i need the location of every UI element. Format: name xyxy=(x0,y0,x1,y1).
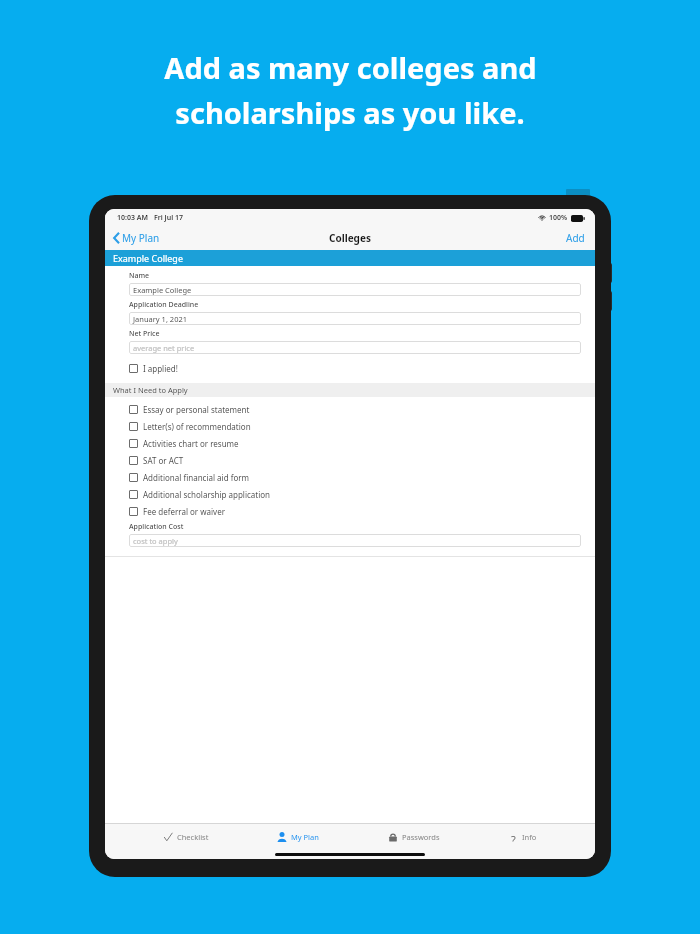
staticText: Letter(s) of recommendation xyxy=(143,421,251,432)
staticText: My Plan xyxy=(122,231,160,245)
staticText: Fee deferral or waiver xyxy=(143,506,225,517)
staticText: Application Deadline xyxy=(129,300,199,310)
staticText: I applied! xyxy=(143,363,178,374)
staticText: Additional scholarship application xyxy=(143,489,271,500)
button[interactable]: average net price xyxy=(129,341,581,354)
staticText: Example College xyxy=(113,252,183,264)
staticText: Info xyxy=(522,832,537,842)
staticText: My Plan xyxy=(291,832,319,842)
button[interactable]: Info xyxy=(498,827,547,847)
button[interactable]: Add xyxy=(556,226,595,250)
button[interactable]: Letter(s) of recommendation xyxy=(105,418,595,435)
staticText: Application Cost xyxy=(129,522,184,532)
staticText: SAT or ACT xyxy=(143,455,184,466)
staticText: 100% xyxy=(549,213,568,223)
button[interactable]: My Plan xyxy=(105,227,168,249)
staticText: What I Need to Apply xyxy=(113,385,188,395)
staticText: Name xyxy=(129,271,150,281)
button[interactable]: I applied! xyxy=(105,360,595,377)
staticText: Fri Jul 17 xyxy=(154,213,184,223)
button[interactable]: My Plan xyxy=(267,827,329,847)
button[interactable]: Checklist xyxy=(153,827,219,847)
button[interactable]: SAT or ACT xyxy=(105,452,595,469)
staticText: Add xyxy=(566,231,585,245)
staticText: Checklist xyxy=(177,832,209,842)
staticText: scholarships as you like. xyxy=(175,93,525,132)
staticText: Activities chart or resume xyxy=(143,438,239,449)
staticText: Add as many colleges and xyxy=(164,48,537,87)
other: Checklist xyxy=(163,832,173,842)
staticText: Example College xyxy=(133,285,192,295)
button[interactable]: cost to apply xyxy=(129,534,581,547)
button[interactable]: Essay or personal statement xyxy=(105,401,595,418)
button[interactable]: Activities chart or resume xyxy=(105,435,595,452)
staticText: cost to apply xyxy=(133,536,178,546)
staticText: 10:03 AM xyxy=(117,213,148,223)
staticText: Net Price xyxy=(129,329,160,339)
other: My Plan xyxy=(277,832,287,842)
button[interactable]: January 1, 2021 xyxy=(129,312,581,325)
staticText: January 1, 2021 xyxy=(133,314,188,324)
button[interactable]: Additional scholarship application xyxy=(105,486,595,503)
staticText: Additional financial aid form xyxy=(143,472,250,483)
button[interactable]: Fee deferral or waiver xyxy=(105,503,595,520)
staticText: Colleges xyxy=(329,231,371,245)
button[interactable]: Passwords xyxy=(378,827,450,847)
button[interactable]: Example College xyxy=(129,283,581,296)
other: Passwords xyxy=(388,832,398,842)
staticText: Essay or personal statement xyxy=(143,404,250,415)
staticText: Passwords xyxy=(402,832,440,842)
staticText: average net price xyxy=(133,343,195,353)
staticText: ? xyxy=(511,832,516,842)
button[interactable]: Additional financial aid form xyxy=(105,469,595,486)
other: Info xyxy=(508,832,518,842)
